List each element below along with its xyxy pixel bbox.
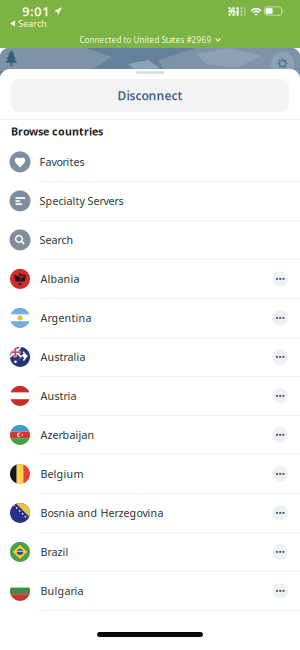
button[interactable]: Azerbaijan [0, 416, 300, 454]
button[interactable]: Map settings [271, 52, 294, 75]
button[interactable]: More options [272, 466, 288, 482]
staticText: Search [18, 17, 47, 30]
button[interactable]: More options [272, 388, 288, 404]
button[interactable]: Austria [0, 377, 300, 415]
button[interactable]: Australia [0, 338, 300, 376]
staticText: Specialty Servers [39, 194, 123, 208]
button[interactable]: Belgium [0, 455, 300, 493]
button[interactable]: Favorites [0, 143, 300, 181]
button[interactable]: Argentina [0, 299, 300, 337]
staticText: Connected to United States #2969 [79, 35, 211, 45]
button[interactable]: More options [272, 544, 288, 560]
button[interactable]: More options [272, 310, 288, 326]
staticText: 9:01 [22, 2, 50, 20]
staticText: Argentina [40, 311, 91, 325]
staticText: Disconnect [117, 87, 182, 103]
button[interactable]: Search [0, 221, 300, 259]
staticText: Azerbaijan [40, 428, 94, 442]
staticText: Albania [40, 272, 79, 286]
staticText: Australia [40, 350, 85, 364]
button[interactable]: Bosnia and Herzegovina [0, 494, 300, 532]
button[interactable]: More options [272, 583, 288, 599]
button[interactable]: More options [272, 349, 288, 365]
staticText: Belgium [40, 467, 83, 481]
button[interactable]: Connected to United States #2969 [0, 32, 300, 48]
button[interactable]: More options [272, 271, 288, 287]
button[interactable]: Bulgaria [0, 572, 300, 610]
staticText: Browse countries [11, 124, 103, 138]
button[interactable]: Specialty Servers [0, 182, 300, 220]
staticText: Search [39, 233, 73, 247]
staticText: Brazil [40, 545, 68, 559]
staticText: Bosnia and Herzegovina [40, 506, 163, 520]
button[interactable]: Albania [0, 260, 300, 298]
button[interactable]: Disconnect [11, 79, 289, 112]
staticText: Austria [40, 389, 76, 403]
staticText: Bulgaria [40, 584, 83, 598]
staticText: Favorites [39, 155, 84, 169]
button[interactable]: Brazil [0, 533, 300, 571]
button[interactable]: More options [272, 427, 288, 443]
button[interactable]: More options [272, 505, 288, 521]
